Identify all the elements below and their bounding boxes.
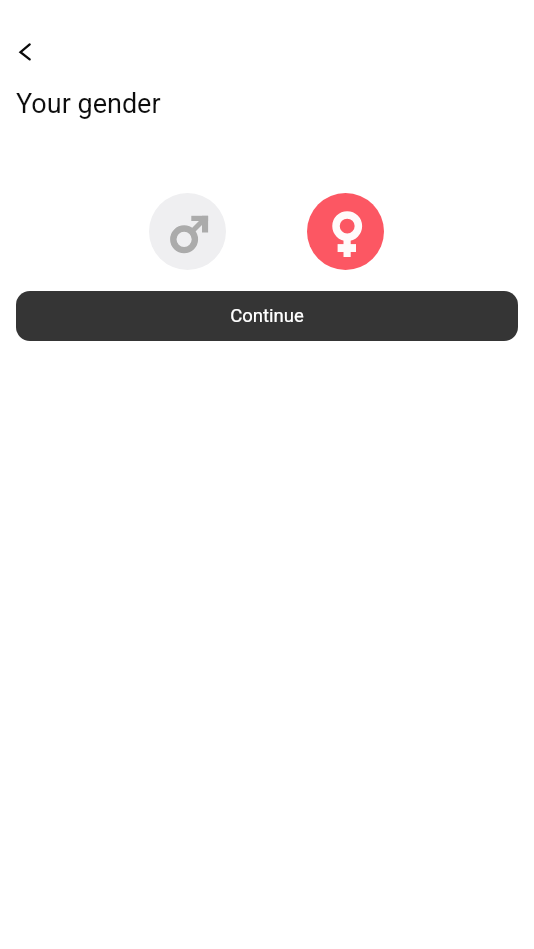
staticText: Your gender — [16, 88, 161, 120]
button[interactable]: Female, selected — [307, 193, 384, 270]
button[interactable]: Back — [5, 33, 45, 73]
staticText: Continue — [230, 305, 304, 327]
button[interactable]: Continue — [16, 291, 518, 341]
button[interactable]: Male — [149, 193, 226, 270]
